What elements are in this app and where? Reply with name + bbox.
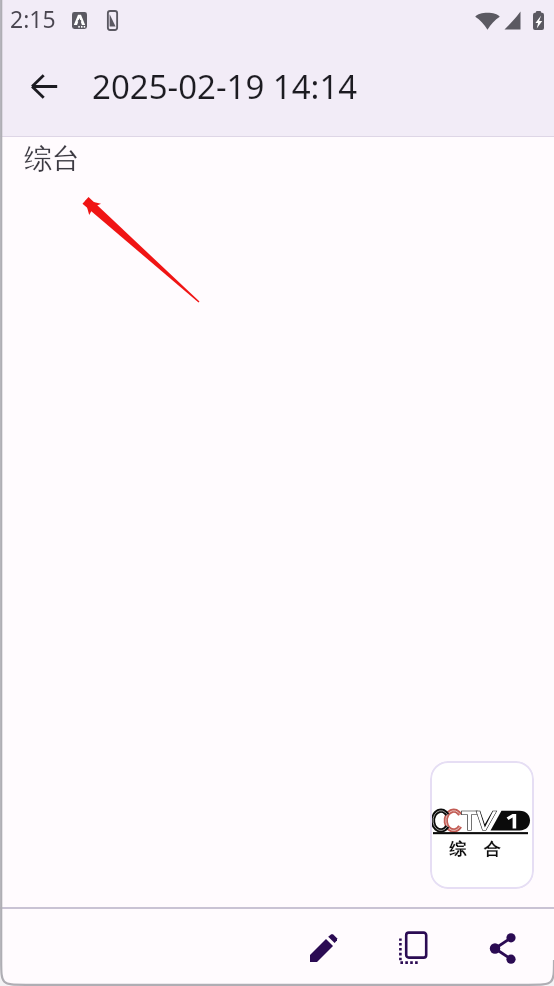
staticText: 综台 <box>24 141 80 176</box>
button[interactable]: CCTV-1 综合 <box>430 761 534 889</box>
button[interactable]: Split screen <box>389 924 437 972</box>
staticText: 2025-02-19 14:14 <box>92 64 358 109</box>
staticText: 综 合 <box>449 837 501 860</box>
button[interactable]: Share <box>479 924 527 972</box>
button[interactable]: Edit <box>299 924 347 972</box>
button[interactable]: Back <box>20 62 68 110</box>
staticText: 2:15 <box>10 3 56 34</box>
